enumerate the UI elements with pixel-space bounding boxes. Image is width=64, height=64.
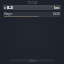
button[interactable]: More details [9,59,55,62]
staticText: TODAY [27,1,38,4]
staticText: 6420 [53,12,60,16]
staticText: More [29,59,36,62]
staticText: Steps [4,12,12,16]
staticText: km [54,5,60,10]
staticText: 8.2 [7,5,13,10]
button[interactable]: 8.2 [3,5,61,10]
button[interactable]: Steps [3,12,61,17]
